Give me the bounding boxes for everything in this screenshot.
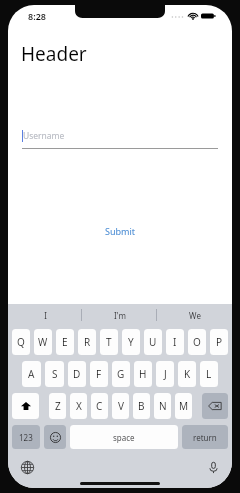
button[interactable]: Q [12, 329, 30, 355]
staticText: G [117, 367, 125, 381]
button[interactable]: Dictate [202, 456, 224, 478]
staticText: I'm [114, 310, 126, 321]
staticText: E [62, 335, 68, 349]
staticText: Y [128, 335, 134, 349]
button[interactable]: space [70, 425, 178, 449]
button[interactable]: O [188, 329, 206, 355]
button[interactable]: S [45, 361, 64, 387]
staticText: J [164, 367, 167, 381]
button[interactable]: G [112, 361, 130, 387]
button[interactable]: We [157, 304, 232, 326]
button[interactable]: Submit [95, 221, 146, 241]
button[interactable]: Z [49, 393, 66, 419]
staticText: K [184, 367, 191, 381]
button[interactable]: X [70, 393, 87, 419]
staticText: C [96, 399, 103, 413]
button[interactable]: R [78, 329, 96, 355]
staticText: I [44, 310, 47, 321]
button[interactable]: E [56, 329, 74, 355]
staticText: space [113, 432, 135, 443]
button[interactable]: D [68, 361, 86, 387]
staticText: M [179, 399, 189, 413]
staticText: H [139, 367, 147, 381]
button[interactable]: K [178, 361, 196, 387]
staticText: V [118, 399, 124, 413]
staticText: X [76, 399, 82, 413]
staticText: 123 [19, 432, 33, 443]
button[interactable]: Backspace [202, 393, 228, 419]
button[interactable]: I [166, 329, 184, 355]
staticText: O [193, 335, 201, 349]
staticText: return [193, 432, 217, 443]
button[interactable]: return [182, 425, 228, 449]
staticText: N [159, 399, 167, 413]
button[interactable]: Y [122, 329, 140, 355]
staticText: R [84, 335, 91, 349]
staticText: Q [17, 335, 25, 349]
staticText: P [216, 335, 223, 349]
button[interactable]: P [210, 329, 228, 355]
staticText: A [28, 367, 35, 381]
button[interactable]: 123 [12, 425, 40, 449]
button[interactable]: Username [22, 130, 218, 149]
button[interactable]: I [8, 304, 82, 326]
button[interactable]: H [134, 361, 152, 387]
staticText: Z [55, 399, 61, 413]
button[interactable]: T [100, 329, 118, 355]
staticText: F [96, 367, 102, 381]
staticText: U [149, 335, 157, 349]
staticText: Submit [105, 225, 136, 237]
button[interactable]: Change keyboard language [16, 456, 38, 478]
staticText: Username [23, 130, 65, 142]
button[interactable]: F [90, 361, 108, 387]
button[interactable]: U [144, 329, 162, 355]
staticText: S [52, 367, 58, 381]
button[interactable]: W [34, 329, 52, 355]
staticText: L [206, 367, 212, 381]
staticText: 8:28 [28, 10, 46, 22]
staticText: I [173, 335, 177, 349]
button[interactable]: Shift [12, 393, 39, 419]
button[interactable]: B [133, 393, 150, 419]
staticText: D [73, 367, 81, 381]
staticText: B [138, 399, 145, 413]
button[interactable]: Emoji [44, 425, 66, 449]
button[interactable]: V [112, 393, 129, 419]
button[interactable]: J [156, 361, 174, 387]
button[interactable]: L [200, 361, 218, 387]
staticText: W [38, 335, 48, 349]
staticText: We [189, 310, 201, 321]
button[interactable]: N [154, 393, 171, 419]
button[interactable]: C [91, 393, 108, 419]
staticText: T [106, 335, 112, 349]
button[interactable]: M [175, 393, 192, 419]
button[interactable]: I'm [82, 304, 157, 326]
button[interactable]: A [22, 361, 41, 387]
staticText: Header [21, 41, 87, 67]
